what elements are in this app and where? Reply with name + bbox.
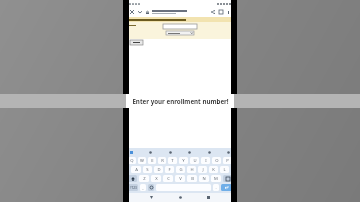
button[interactable]: Keyboard tool 2 [168, 150, 173, 155]
button[interactable]: Keyboard tool 3 [187, 150, 192, 155]
button[interactable]: L [220, 166, 229, 173]
button[interactable]: Home [177, 194, 184, 201]
button[interactable]: Keyboard tool 5 [226, 150, 231, 155]
staticText: L [223, 167, 226, 173]
button[interactable]: Z [139, 175, 149, 182]
button[interactable]: O [212, 157, 221, 164]
button[interactable]: Recents [205, 194, 212, 201]
staticText: S [146, 167, 149, 173]
button[interactable]: Enter [221, 184, 232, 191]
button[interactable]: Keyboard tool 4 [207, 150, 212, 155]
staticText: K [212, 167, 215, 173]
staticText: N [202, 176, 206, 182]
button[interactable]: A [131, 166, 141, 173]
button[interactable]: Keyboard tool 0 [129, 150, 134, 155]
staticText: Y [182, 158, 185, 164]
button[interactable]: U [190, 157, 199, 164]
staticText: T [171, 158, 174, 164]
button[interactable]: K [209, 166, 218, 173]
button[interactable]: Y [179, 157, 188, 164]
button[interactable]: ?123 [128, 184, 138, 191]
button[interactable]: G [176, 166, 185, 173]
staticText: W [140, 158, 144, 164]
button[interactable]: J [198, 166, 207, 173]
button[interactable]: T [168, 157, 177, 164]
button[interactable]: P [223, 157, 232, 164]
button[interactable]: X [151, 175, 161, 182]
button[interactable]: H [187, 166, 196, 173]
button[interactable]: I [201, 157, 210, 164]
button[interactable] [130, 40, 143, 45]
button[interactable]: Keyboard tool 1 [148, 150, 153, 155]
button[interactable]: F [165, 166, 174, 173]
staticText: , [142, 185, 144, 191]
staticText: V [179, 176, 182, 182]
button[interactable]: Emoji [148, 184, 154, 191]
button[interactable]: S [143, 166, 152, 173]
staticText: . [215, 185, 217, 191]
staticText: Z [143, 176, 146, 182]
button[interactable]: , [140, 184, 146, 191]
staticText: F [168, 167, 171, 173]
button[interactable]: . [213, 184, 219, 191]
staticText: I [205, 158, 207, 164]
button[interactable]: B [187, 175, 197, 182]
button[interactable]: Tabs [217, 8, 225, 16]
staticText: Enter your enrollment number! [132, 97, 229, 105]
button[interactable]: D [154, 166, 163, 173]
staticText: Q [130, 158, 134, 164]
staticText: B [191, 176, 194, 182]
button[interactable]: N [199, 175, 209, 182]
button[interactable]: Backspace [223, 175, 232, 182]
button[interactable]: Back [148, 194, 155, 201]
button[interactable]: Q [128, 157, 136, 164]
button[interactable] [166, 31, 194, 35]
button[interactable]: C [163, 175, 173, 182]
staticText: M [214, 176, 218, 182]
staticText: H [190, 167, 194, 173]
button[interactable]: More options [225, 9, 232, 16]
button[interactable]: V [175, 175, 185, 182]
staticText: O [215, 158, 219, 164]
staticText: A [135, 167, 138, 173]
button[interactable]: Shift [128, 175, 137, 182]
staticText: P [226, 158, 229, 164]
staticText: G [179, 167, 183, 173]
staticText: C [167, 176, 170, 182]
button[interactable]: Share [209, 8, 217, 16]
button[interactable] [163, 24, 197, 29]
button[interactable]: R [158, 157, 166, 164]
button[interactable]: M [211, 175, 221, 182]
button[interactable]: Back [136, 8, 144, 16]
button[interactable]: E [148, 157, 156, 164]
staticText: E [151, 158, 154, 164]
staticText: R [161, 158, 164, 164]
staticText: J [202, 167, 204, 173]
button[interactable]: W [138, 157, 146, 164]
button[interactable]: Close [128, 8, 136, 16]
staticText: U [193, 158, 197, 164]
staticText: X [155, 176, 158, 182]
staticText: ?123 [130, 186, 137, 190]
staticText: D [157, 167, 161, 173]
